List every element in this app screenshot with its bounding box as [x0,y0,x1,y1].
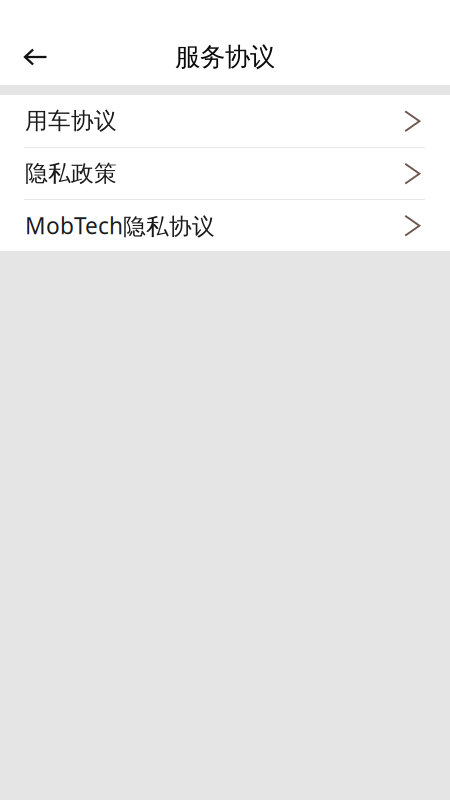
button[interactable]: Back [14,37,58,77]
staticText: 用车协议 [25,107,117,135]
button[interactable]: 用车协议 [0,95,450,147]
staticText: 隐私政策 [25,160,117,187]
staticText: 服务协议 [175,41,275,72]
button[interactable]: 隐私政策 [0,148,450,199]
button[interactable]: MobTech隐私协议 [0,200,450,251]
staticText: MobTech隐私协议 [25,210,215,241]
